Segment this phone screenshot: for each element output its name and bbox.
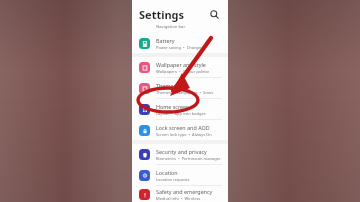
staticText: Themes • Wallpapers • Icons — [156, 90, 214, 95]
staticText: Wallpapers • Colour palette — [156, 69, 210, 74]
staticText: Location — [156, 169, 178, 176]
button[interactable]: Home screen — [132, 99, 228, 119]
button[interactable]: Battery — [132, 33, 228, 53]
button[interactable]: Location — [132, 165, 228, 185]
staticText: Layout • App icon badges — [156, 111, 206, 116]
staticText: Screen lock type • Always On Display — [156, 132, 222, 137]
staticText: Battery — [156, 37, 175, 44]
button[interactable]: Search — [207, 7, 221, 21]
staticText: Medical info • Wireless emergency alerts — [156, 196, 222, 201]
button[interactable]: Wallpaper and style — [132, 57, 228, 77]
button[interactable]: Lock screen and AOD — [132, 120, 228, 140]
button[interactable]: Safety and emergency — [132, 186, 228, 202]
staticText: Home screen — [156, 103, 190, 110]
staticText: Navigation bar — [156, 24, 186, 30]
button[interactable]: Security and privacy — [132, 144, 228, 164]
staticText: Security and privacy — [156, 148, 207, 155]
staticText: Lock screen and AOD — [156, 124, 210, 131]
staticText: Wallpaper and style — [156, 61, 206, 68]
staticText: Themes — [156, 82, 177, 89]
staticText: Biometrics • Permission manager — [156, 156, 221, 161]
staticText: Safety and emergency — [156, 188, 213, 195]
staticText: Settings — [139, 7, 185, 22]
button[interactable]: Themes — [132, 78, 228, 98]
staticText: Power saving • Charging — [156, 45, 204, 50]
staticText: Location requests — [156, 177, 190, 182]
